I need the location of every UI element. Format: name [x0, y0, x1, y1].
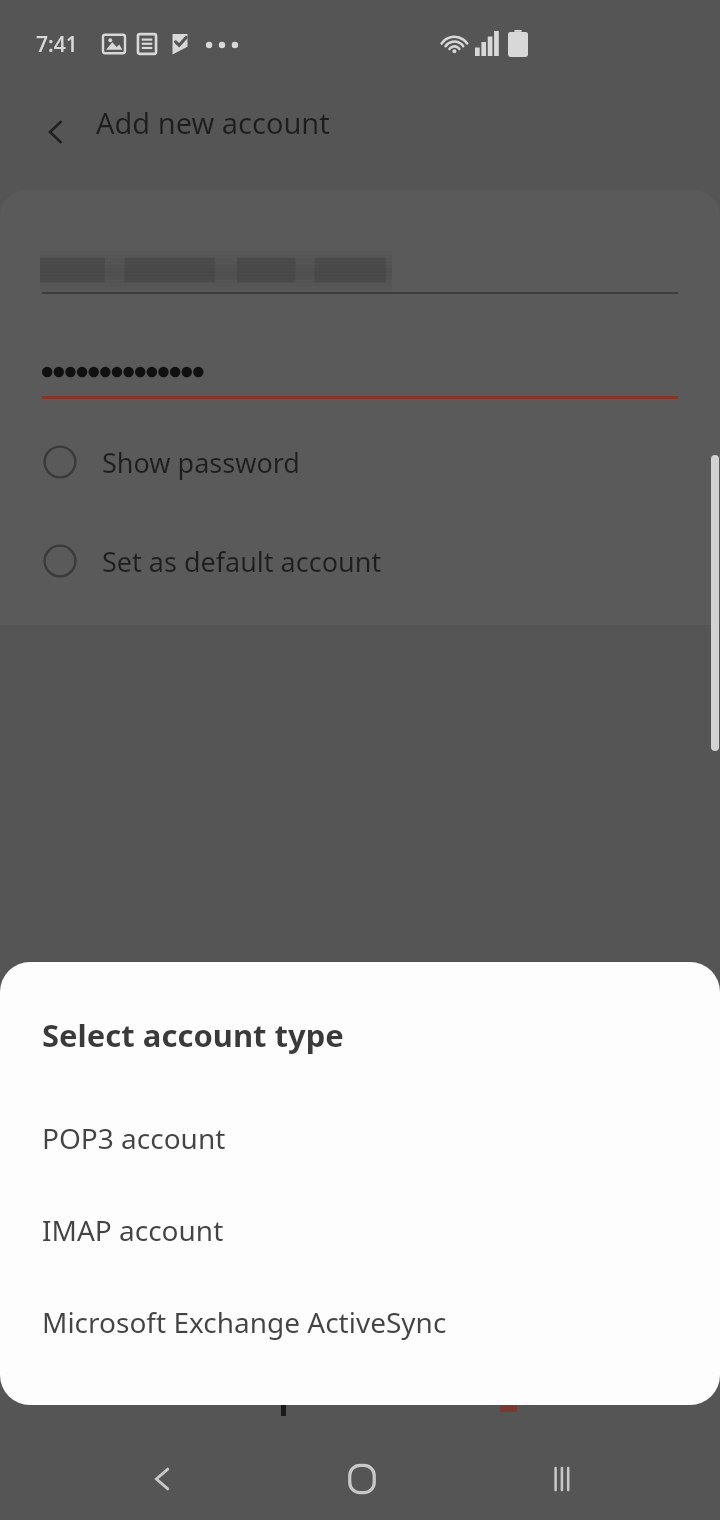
- staticText: Add new account: [96, 103, 330, 142]
- button[interactable]: Microsoft Exchange ActiveSync: [0, 1285, 720, 1359]
- staticText: Set as default account: [102, 543, 382, 580]
- staticText: POP3 account: [42, 1119, 226, 1157]
- button[interactable]: Show password: [0, 430, 720, 494]
- button[interactable]: Recent apps: [524, 1439, 604, 1519]
- button[interactable]: Set as default account: [0, 529, 720, 593]
- staticText: Select account type: [42, 1014, 344, 1056]
- button[interactable]: IMAP account: [0, 1193, 720, 1267]
- staticText: Microsoft Exchange ActiveSync: [42, 1303, 447, 1341]
- staticText: Show password: [102, 444, 300, 481]
- button[interactable]: Home: [322, 1439, 402, 1519]
- button[interactable]: Back: [123, 1439, 203, 1519]
- button[interactable]: Back: [22, 98, 90, 166]
- button[interactable]: POP3 account: [0, 1101, 720, 1175]
- staticText: IMAP account: [42, 1211, 224, 1249]
- staticText: 7:41: [36, 30, 78, 59]
